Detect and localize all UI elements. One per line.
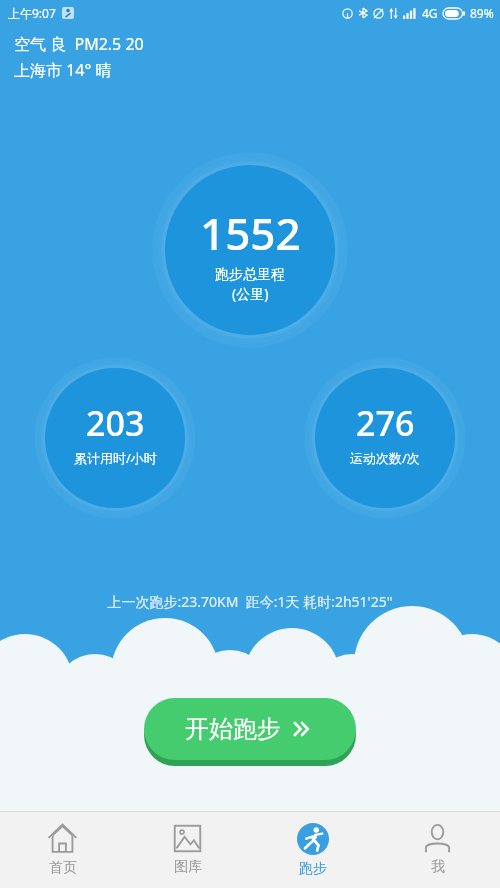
- staticText: 跑步总里程: [215, 266, 285, 284]
- staticText: 203: [86, 400, 145, 446]
- staticText: 开始跑步: [185, 714, 281, 744]
- staticText: 上午9:07: [8, 5, 56, 21]
- staticText: 图库: [174, 858, 202, 876]
- button[interactable]: 首页: [0, 812, 125, 888]
- staticText: 1552: [200, 203, 301, 263]
- staticText: 276: [356, 400, 415, 446]
- staticText: (公里): [232, 284, 269, 303]
- staticText: 首页: [49, 859, 77, 877]
- staticText: 上海市 14° 晴: [14, 59, 112, 81]
- staticText: 空气 良 PM2.5 20: [14, 33, 144, 55]
- staticText: 累计用时/小时: [74, 449, 157, 467]
- staticText: 跑步: [299, 860, 327, 878]
- staticText: 运动次数/次: [350, 449, 420, 467]
- button[interactable]: 开始跑步: [144, 698, 356, 760]
- button[interactable]: 我: [375, 812, 500, 888]
- staticText: 89%: [470, 5, 494, 21]
- staticText: 我: [431, 858, 445, 876]
- button[interactable]: 图库: [125, 812, 250, 888]
- staticText: 4G: [422, 5, 438, 21]
- staticText: 上一次跑步:23.70KM 距今:1天 耗时:2h51'25": [0, 592, 500, 611]
- button[interactable]: 跑步: [250, 812, 375, 888]
